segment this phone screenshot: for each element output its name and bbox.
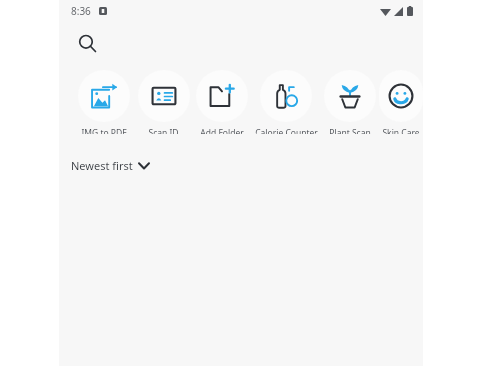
staticText: 8:36 — [71, 4, 91, 18]
button[interactable]: Scan ID — [135, 64, 192, 134]
button[interactable]: IMG to PDF — [72, 64, 135, 134]
staticText: Calorie Counter — [255, 127, 318, 134]
staticText: Add Folder — [200, 127, 244, 134]
button[interactable]: Newest first — [67, 154, 153, 177]
button[interactable]: Search — [71, 27, 103, 59]
staticText: IMG to PDF — [81, 127, 127, 134]
button[interactable]: Skin Care — [379, 64, 423, 134]
staticText: Plant Scan — [329, 127, 371, 134]
button[interactable]: Calorie Counter — [251, 64, 321, 134]
button[interactable]: Plant Scan — [321, 64, 379, 134]
staticText: Scan ID — [148, 127, 179, 134]
staticText: Newest first — [71, 158, 133, 173]
staticText: Skin Care — [382, 127, 420, 134]
button[interactable]: Add Folder — [192, 64, 251, 134]
